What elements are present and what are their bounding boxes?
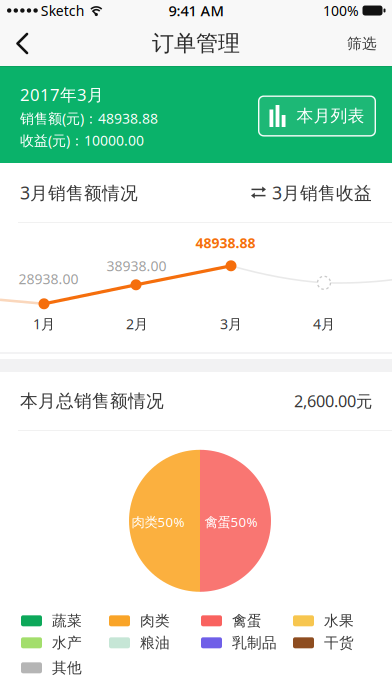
staticText: 9:41 AM xyxy=(168,0,223,20)
button[interactable]: 筛选 xyxy=(347,26,392,61)
staticText: 4月 xyxy=(313,314,335,333)
staticText: 2,600.00元 xyxy=(294,390,372,412)
staticText: 100% xyxy=(323,1,359,20)
staticText: 38938.00 xyxy=(106,256,166,275)
staticText: 肉类 xyxy=(140,612,170,630)
staticText: 粮油 xyxy=(140,634,170,652)
staticText: 订单管理 xyxy=(152,30,240,57)
staticText: 28938.00 xyxy=(18,269,78,288)
staticText: 3月销售额情况 xyxy=(20,180,138,205)
staticText: 禽蛋50% xyxy=(204,513,257,531)
staticText: 水产 xyxy=(52,634,82,652)
button[interactable]: 3月销售收益 xyxy=(251,170,392,215)
staticText: 48938.88 xyxy=(195,233,255,252)
button[interactable]: 本月列表 xyxy=(258,94,376,135)
staticText: 3月销售收益 xyxy=(272,180,372,205)
staticText: 蔬菜 xyxy=(52,612,82,630)
staticText: 干货 xyxy=(324,634,354,652)
staticText: 收益(元)：10000.00 xyxy=(20,131,144,150)
staticText: 本月列表 xyxy=(296,105,364,127)
staticText: 水果 xyxy=(324,612,354,630)
staticText: 3月 xyxy=(220,314,242,333)
staticText: 其他 xyxy=(52,659,82,677)
staticText: 肉类50% xyxy=(131,513,184,531)
staticText: Sketch xyxy=(41,1,85,20)
staticText: 本月总销售额情况 xyxy=(20,390,164,412)
staticText: 2月 xyxy=(126,314,148,333)
staticText: 1月 xyxy=(33,314,55,333)
staticText: 销售额(元)：48938.88 xyxy=(20,109,158,128)
staticText: 禽蛋 xyxy=(232,612,262,630)
button[interactable] xyxy=(0,24,30,62)
staticText: 乳制品 xyxy=(232,634,277,652)
staticText: 筛选 xyxy=(347,34,377,53)
staticText: 2017年3月 xyxy=(20,83,104,106)
